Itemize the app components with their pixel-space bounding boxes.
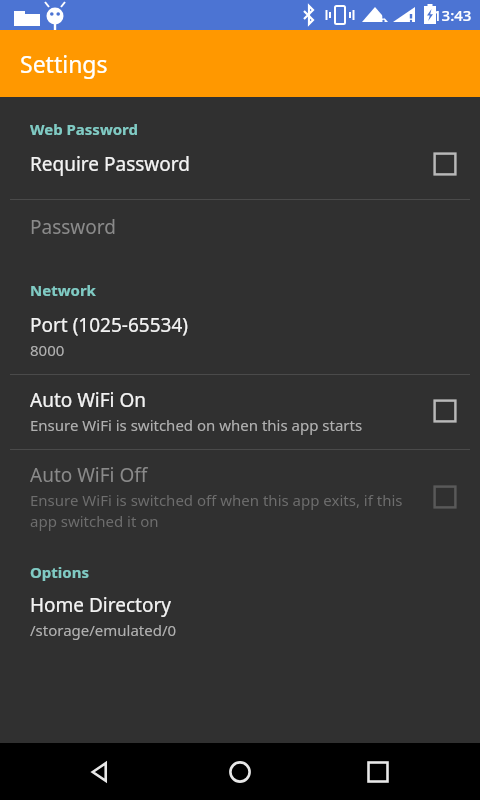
staticText: Options: [30, 562, 89, 582]
staticText: 8000: [30, 340, 65, 360]
button[interactable]: Auto WiFi Off: [0, 450, 480, 546]
staticText: Ensure WiFi is switched on when this app…: [30, 415, 363, 435]
button[interactable]: Back: [72, 744, 128, 800]
button[interactable]: Port (1025-65534): [0, 300, 480, 374]
staticText: Auto WiFi On: [30, 387, 147, 413]
staticText: Require Password: [30, 151, 190, 177]
staticText: /storage/emulated/0: [30, 620, 177, 640]
staticText: Password: [30, 214, 116, 240]
staticText: Ensure WiFi is switched off when this ap…: [30, 490, 420, 532]
staticText: Auto WiFi Off: [30, 462, 148, 488]
button[interactable]: Auto WiFi On: [0, 375, 480, 449]
staticText: Port (1025-65534): [30, 312, 188, 338]
button[interactable]: Require Password: [0, 139, 480, 189]
button[interactable]: Password: [0, 200, 480, 254]
staticText: Home Directory: [30, 592, 171, 618]
button[interactable]: Home: [212, 744, 268, 800]
button[interactable]: Recent apps: [350, 744, 406, 800]
button[interactable]: Home Directory: [0, 582, 480, 650]
staticText: Settings: [20, 48, 108, 79]
staticText: 13:43: [433, 5, 472, 25]
staticText: Web Password: [30, 119, 139, 139]
staticText: Network: [30, 280, 96, 300]
